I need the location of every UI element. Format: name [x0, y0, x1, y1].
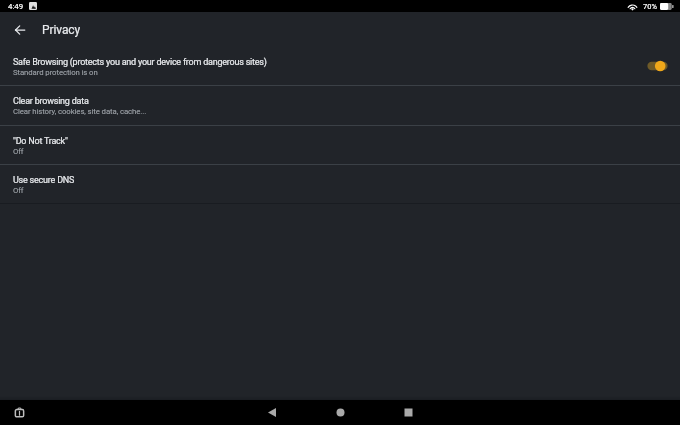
staticText: Off [13, 186, 24, 195]
staticText: Safe Browsing (protects you and your dev… [13, 57, 267, 68]
staticText: Use secure DNS [13, 175, 75, 186]
button[interactable]: Home [329, 401, 351, 423]
staticText: 4:49 [8, 2, 24, 11]
button[interactable]: Safe Browsing (protects you and your dev… [0, 47, 680, 86]
staticText: Off [13, 147, 24, 156]
staticText: Clear history, cookies, site data, cache… [13, 107, 147, 116]
button[interactable]: Switch input method [11, 404, 27, 420]
button[interactable]: Clear browsing data [0, 86, 680, 126]
button[interactable]: Safe Browsing switch, on [644, 56, 672, 78]
button[interactable]: Navigate up [6, 16, 33, 43]
staticText: Clear browsing data [13, 96, 89, 107]
button[interactable]: Recent apps [397, 401, 419, 423]
button[interactable]: Back [261, 401, 283, 423]
button[interactable]: Use secure DNS [0, 165, 680, 204]
staticText: 70% [643, 2, 657, 11]
staticText: Privacy [42, 23, 81, 37]
staticText: Standard protection is on [13, 68, 98, 77]
staticText: "Do Not Track" [13, 136, 68, 147]
button[interactable]: "Do Not Track" [0, 126, 680, 165]
